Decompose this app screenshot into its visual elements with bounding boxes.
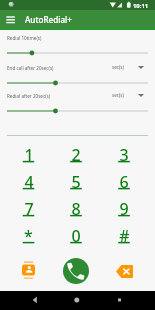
button[interactable]: 0: [52, 223, 100, 250]
staticText: 7: [24, 198, 34, 220]
button[interactable]: 6: [100, 169, 148, 196]
button[interactable]: sec(s): [112, 92, 144, 98]
button[interactable]: *: [5, 223, 52, 250]
button[interactable]: 5: [52, 169, 100, 196]
staticText: 10:11: [133, 2, 149, 10]
button[interactable]: 9: [100, 196, 148, 223]
staticText: sec(s): [112, 64, 124, 70]
staticText: 5: [71, 171, 81, 193]
button[interactable]: Delete: [116, 265, 133, 278]
button[interactable]: sec(s): [112, 64, 144, 70]
staticText: 4: [24, 171, 34, 193]
staticText: 2: [71, 144, 81, 166]
button[interactable]: 3: [100, 142, 148, 169]
staticText: 9: [119, 198, 129, 220]
button[interactable]: Call: [63, 258, 89, 284]
button[interactable]: Pick contact: [21, 261, 36, 280]
staticText: AutoRedial+: [25, 14, 72, 25]
staticText: 1: [24, 144, 34, 166]
staticText: Redial 10time(s): [7, 35, 42, 41]
button[interactable]: 4: [5, 169, 52, 196]
button[interactable]: 7: [5, 196, 52, 223]
button[interactable]: 1: [5, 142, 52, 169]
button[interactable]: 2: [52, 142, 100, 169]
staticText: 8: [71, 198, 81, 220]
staticText: End call after 20sec(s): [7, 65, 54, 71]
staticText: 3: [119, 144, 129, 166]
staticText: *: [24, 225, 33, 247]
button[interactable]: #: [100, 223, 148, 250]
staticText: 0: [71, 225, 81, 247]
staticText: 6: [119, 171, 129, 193]
staticText: sec(s): [112, 92, 124, 98]
button[interactable]: 8: [52, 196, 100, 223]
staticText: #: [119, 225, 130, 247]
staticText: Redial after 20sec(s): [7, 93, 51, 99]
button[interactable]: Open navigation menu: [4, 13, 17, 26]
